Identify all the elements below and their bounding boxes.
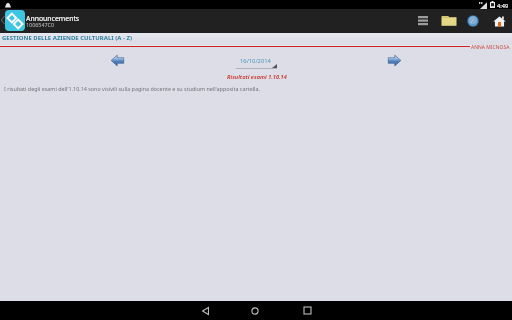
button[interactable]: Files (438, 11, 460, 31)
staticText: ANNA MICNOSA (471, 44, 510, 51)
button[interactable]: Navigate up (0, 13, 5, 27)
staticText: 1006547C0 (26, 21, 55, 28)
button[interactable]: App icon (5, 10, 25, 31)
button[interactable]: Previous announcement (109, 53, 126, 68)
staticText: 16/10/2014 (240, 57, 271, 65)
staticText: Risultati esami 1.10.14 (227, 73, 287, 81)
button[interactable]: Home (488, 11, 510, 31)
staticText: GESTIONE DELLE AZIENDE CULTURALI (A - Z) (2, 34, 132, 42)
button[interactable]: List (412, 11, 434, 31)
button[interactable]: Recent apps (286, 301, 328, 320)
button[interactable]: Next announcement (386, 53, 403, 68)
button[interactable]: Back (184, 301, 226, 320)
staticText: Announcements (26, 14, 80, 23)
staticText: I risultati degli esami dell'1.10.14 son… (4, 85, 260, 92)
staticText: 4:49 (497, 2, 509, 10)
button[interactable]: Browser (462, 11, 484, 31)
button[interactable]: 16/10/2014 (235, 55, 278, 68)
button[interactable]: Home (234, 301, 276, 320)
